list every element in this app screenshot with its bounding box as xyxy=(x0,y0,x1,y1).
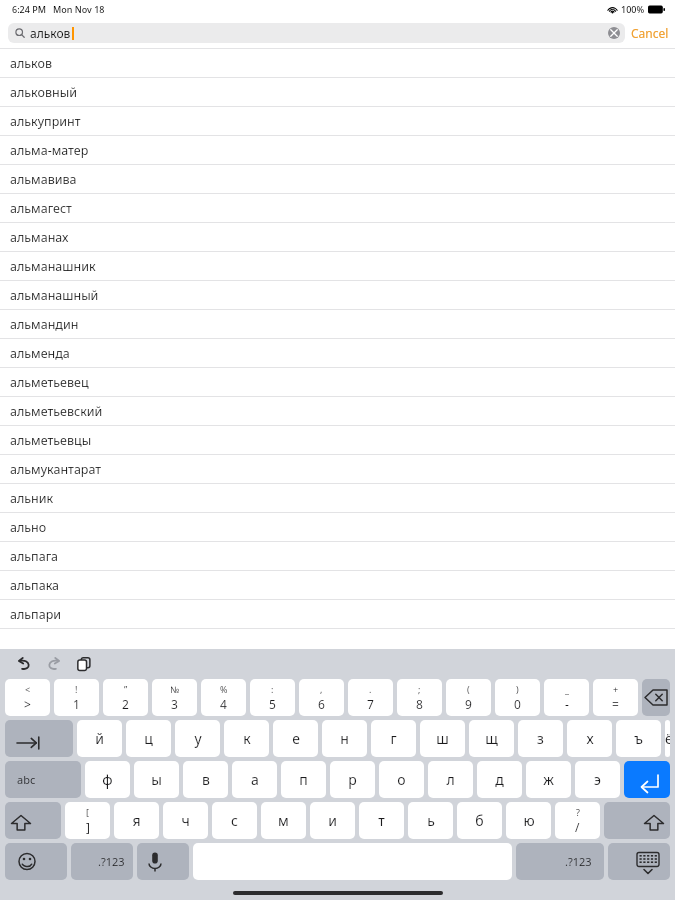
button[interactable]: альмандин xyxy=(0,310,675,339)
staticText: н xyxy=(340,729,349,748)
button[interactable]: л xyxy=(428,761,473,798)
button[interactable]: ( xyxy=(446,679,491,716)
staticText: альмукантарат xyxy=(10,461,102,478)
button[interactable]: альманах xyxy=(0,223,675,252)
button[interactable]: ) xyxy=(495,679,540,716)
button[interactable]: н xyxy=(322,720,367,757)
button[interactable]: + xyxy=(593,679,638,716)
button[interactable]: алькупринт xyxy=(0,107,675,136)
button[interactable]: альманашник xyxy=(0,252,675,281)
button[interactable]: г xyxy=(371,720,416,757)
button[interactable]: ю xyxy=(506,802,551,839)
button[interactable]: альков xyxy=(8,23,625,43)
staticText: э xyxy=(594,770,601,789)
button[interactable]: Paste xyxy=(72,652,96,676)
button[interactable]: альник xyxy=(0,484,675,513)
button[interactable]: ш xyxy=(420,720,465,757)
button[interactable]: й xyxy=(77,720,122,757)
button[interactable]: альметьевцы xyxy=(0,426,675,455)
button[interactable]: ; xyxy=(397,679,442,716)
staticText: альков xyxy=(10,55,52,72)
staticText: й xyxy=(95,729,104,748)
button[interactable]: м xyxy=(261,802,306,839)
button[interactable]: % xyxy=(201,679,246,716)
staticText: 5 xyxy=(269,696,276,712)
button[interactable]: а xyxy=(232,761,277,798)
button[interactable]: альпага xyxy=(0,542,675,571)
button[interactable]: б xyxy=(457,802,502,839)
button[interactable]: ж xyxy=(526,761,571,798)
button[interactable]: альмавива xyxy=(0,165,675,194)
button[interactable]: Shift xyxy=(604,802,670,839)
button[interactable]: и xyxy=(310,802,355,839)
button[interactable]: < xyxy=(5,679,50,716)
button[interactable]: ы xyxy=(134,761,179,798)
staticText: т xyxy=(378,811,385,830)
button[interactable]: з xyxy=(518,720,563,757)
button[interactable]: альпака xyxy=(0,571,675,600)
button[interactable]: ? xyxy=(555,802,600,839)
button[interactable]: . xyxy=(348,679,393,716)
button[interactable]: Emoji xyxy=(5,843,67,880)
button[interactable]: ц xyxy=(126,720,171,757)
button[interactable]: _ xyxy=(544,679,589,716)
button[interactable]: к xyxy=(224,720,269,757)
button[interactable]: ф xyxy=(85,761,130,798)
button[interactable]: Backspace xyxy=(642,679,670,716)
button[interactable]: альковный xyxy=(0,78,675,107)
button[interactable]: Cancel xyxy=(631,25,669,41)
button[interactable]: альметьевец xyxy=(0,368,675,397)
button[interactable]: д xyxy=(477,761,522,798)
staticText: альмагест xyxy=(10,200,72,217)
button[interactable]: альметьевский xyxy=(0,397,675,426)
button[interactable]: abc xyxy=(5,761,81,798)
button[interactable]: с xyxy=(212,802,257,839)
button[interactable]: альмагест xyxy=(0,194,675,223)
button[interactable]: в xyxy=(183,761,228,798)
button[interactable]: ъ xyxy=(616,720,661,757)
button[interactable]: : xyxy=(250,679,295,716)
staticText: з xyxy=(537,729,544,748)
button[interactable]: Shift xyxy=(5,802,61,839)
button[interactable]: ё xyxy=(665,720,670,757)
button[interactable]: у xyxy=(175,720,220,757)
button[interactable]: о xyxy=(379,761,424,798)
button[interactable]: альма-матер xyxy=(0,136,675,165)
button[interactable]: альпари xyxy=(0,600,675,629)
button[interactable]: р xyxy=(330,761,375,798)
button[interactable]: альмукантарат xyxy=(0,455,675,484)
button[interactable]: Dictation xyxy=(137,843,189,880)
button[interactable]: , xyxy=(299,679,344,716)
button[interactable]: Hide keyboard xyxy=(608,843,670,880)
button[interactable]: х xyxy=(567,720,612,757)
button[interactable]: ь xyxy=(408,802,453,839)
button[interactable]: .?123 xyxy=(71,843,133,880)
button[interactable]: .?123 xyxy=(516,843,604,880)
button[interactable]: альменда xyxy=(0,339,675,368)
button[interactable]: ально xyxy=(0,513,675,542)
button[interactable]: ” xyxy=(103,679,148,716)
button[interactable]: № xyxy=(152,679,197,716)
button[interactable]: [ xyxy=(65,802,110,839)
button[interactable]: Redo xyxy=(42,652,66,676)
staticText: . xyxy=(369,683,372,695)
button[interactable]: альков xyxy=(0,49,675,78)
button[interactable]: э xyxy=(575,761,620,798)
button[interactable]: Clear text xyxy=(608,27,620,39)
button[interactable]: е xyxy=(273,720,318,757)
button[interactable]: п xyxy=(281,761,326,798)
button[interactable]: Tab xyxy=(5,720,73,757)
staticText: д xyxy=(495,770,504,789)
staticText: ) xyxy=(516,683,519,695)
button[interactable]: ч xyxy=(163,802,208,839)
button[interactable]: Return xyxy=(624,761,670,798)
button[interactable]: щ xyxy=(469,720,514,757)
button[interactable]: Undo xyxy=(12,652,36,676)
staticText: х xyxy=(586,729,594,748)
button[interactable]: альманашный xyxy=(0,281,675,310)
button[interactable]: я xyxy=(114,802,159,839)
staticText: ы xyxy=(151,770,162,789)
button[interactable]: ! xyxy=(54,679,99,716)
button[interactable]: т xyxy=(359,802,404,839)
